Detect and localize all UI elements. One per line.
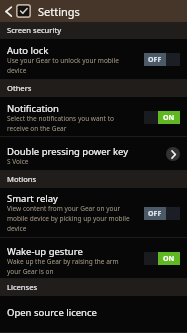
button[interactable]: Double pressing power key: [0, 137, 187, 171]
staticText: Settings: [38, 4, 80, 19]
staticText: Licenses: [7, 282, 38, 292]
staticText: S Voice: [7, 157, 29, 166]
button[interactable]: Turn on: [144, 53, 180, 66]
staticText: Screen security: [7, 25, 61, 35]
staticText: View content from your Gear on your mobi…: [7, 204, 130, 233]
staticText: OFF: [148, 209, 162, 219]
staticText: ON: [163, 254, 175, 264]
staticText: Wake-up gesture: [7, 245, 83, 258]
button[interactable]: Turn on: [144, 207, 180, 220]
staticText: Double pressing power key: [7, 145, 129, 158]
staticText: Motions: [7, 174, 37, 184]
button[interactable]: Open source licence: [0, 296, 187, 333]
staticText: Use your Gear to unlock your mobile devi…: [7, 56, 130, 75]
button[interactable]: Smart relay: [0, 188, 187, 238]
button[interactable]: Turn off: [144, 111, 180, 124]
button[interactable]: Wake-up gesture: [0, 238, 187, 279]
button[interactable]: Notification: [0, 97, 187, 137]
button[interactable]: Open Double pressing power key: [166, 147, 180, 161]
staticText: Wake up the Gear by raising the arm your…: [7, 257, 130, 276]
button[interactable]: Navigate up: [0, 0, 16, 22]
staticText: Auto lock: [7, 44, 49, 57]
button[interactable]: Turn off: [144, 252, 180, 265]
staticText: Notification: [7, 102, 59, 115]
staticText: Select the notifications you want to rec…: [7, 114, 130, 133]
button[interactable]: Auto lock: [0, 39, 187, 80]
staticText: OFF: [148, 55, 162, 65]
staticText: Smart relay: [7, 192, 58, 205]
staticText: ON: [163, 113, 175, 123]
staticText: Others: [7, 83, 32, 93]
staticText: Open source licence: [7, 306, 97, 319]
